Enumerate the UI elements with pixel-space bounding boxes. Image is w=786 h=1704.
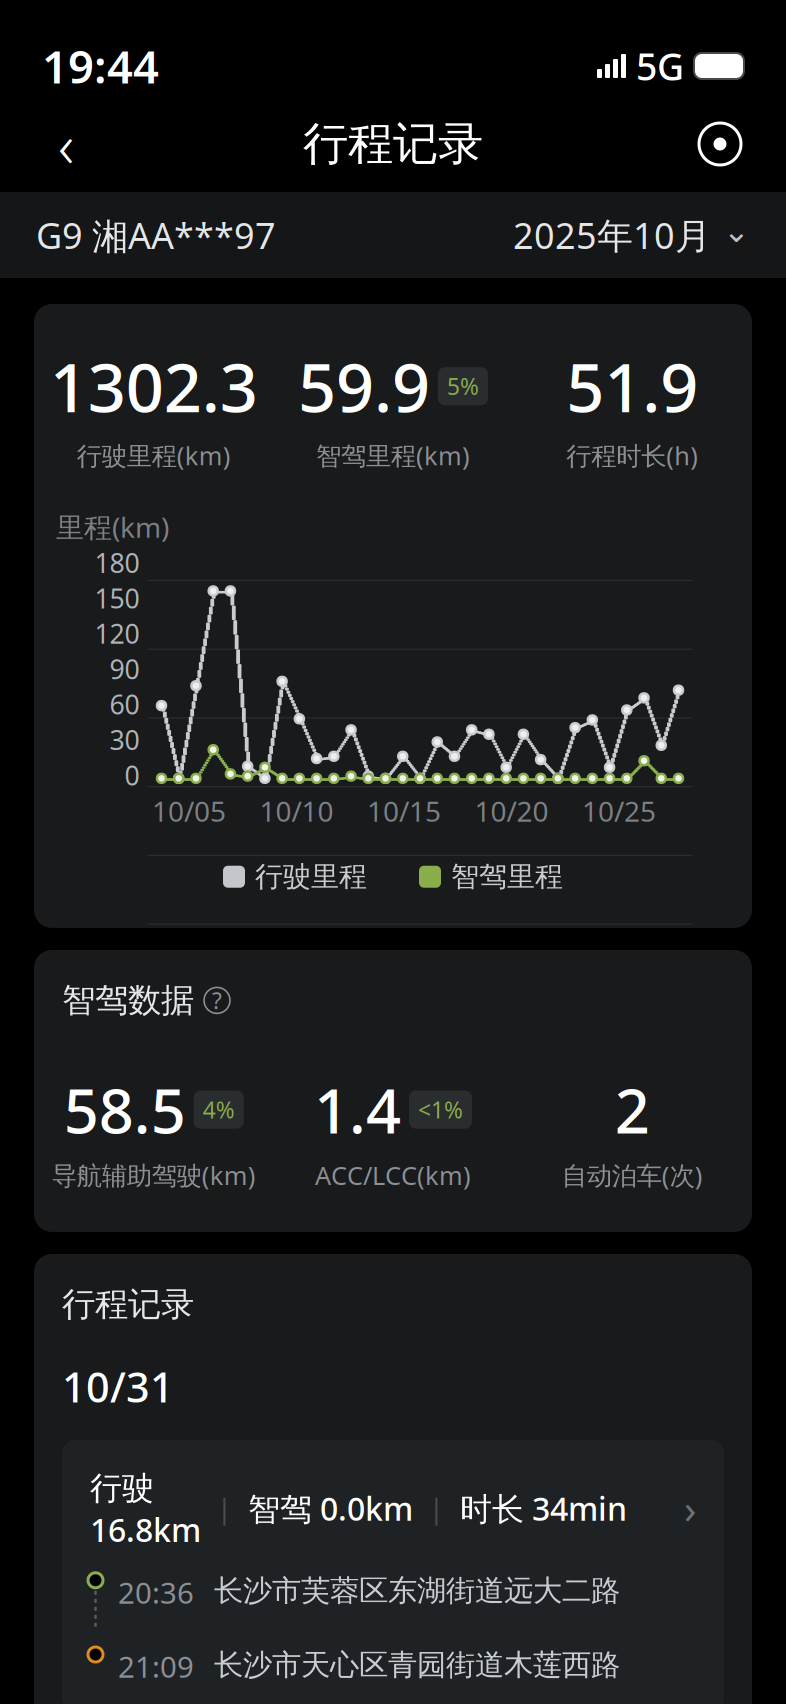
staticText: 10/25 (582, 792, 656, 830)
staticText: 5G (636, 41, 684, 91)
staticText: 10/15 (367, 792, 441, 830)
staticText: 58.5 (64, 1069, 186, 1150)
staticText: G9 湘AA***97 (36, 211, 276, 259)
staticText: 10/05 (152, 792, 226, 830)
staticText: 150 (94, 580, 139, 616)
staticText: 2 (615, 1069, 650, 1150)
staticText: 4% (203, 1094, 235, 1125)
staticText: 20:36 (118, 1573, 194, 1612)
staticText: 59.9 (298, 342, 430, 430)
staticText: › (684, 1482, 696, 1535)
staticText: ? (212, 985, 222, 1015)
staticText: 30 (109, 722, 139, 757)
staticText: 10/31 (62, 1359, 174, 1414)
staticText: 智驾 0.0km (248, 1487, 413, 1529)
staticText: 10/10 (259, 792, 333, 830)
staticText: 10/20 (474, 792, 548, 830)
staticText: 行程时长(h) (566, 438, 698, 472)
staticText: 1302.3 (50, 342, 258, 430)
button[interactable]: 行驶 16.8km (62, 1440, 724, 1704)
staticText: 里程(km) (56, 508, 169, 545)
staticText: 90 (109, 651, 139, 686)
staticText: 长沙市天心区青园街道木莲西路 (214, 1647, 620, 1683)
staticText: <1% (418, 1094, 463, 1125)
staticText: 5% (447, 371, 479, 401)
staticText: 120 (94, 616, 139, 651)
staticText: 行程记录 (303, 116, 483, 172)
staticText: | (217, 1491, 232, 1526)
staticText: 0 (124, 757, 139, 793)
staticText: ACC/LCC(km) (315, 1158, 471, 1192)
staticText: 导航辅助驾驶(km) (52, 1158, 256, 1192)
button[interactable]: 返回 (36, 114, 96, 174)
button[interactable]: 说明 (204, 987, 230, 1013)
staticText: 自动泊车(次) (562, 1158, 703, 1192)
staticText: 19:44 (42, 36, 159, 96)
staticText: 1.4 (314, 1069, 401, 1150)
staticText: ‹ (58, 103, 74, 185)
staticText: 长沙市芙蓉区东湖街道远大二路 (214, 1573, 620, 1609)
staticText: 60 (109, 687, 139, 722)
staticText: 智驾里程 (451, 859, 563, 894)
staticText: 行驶里程 (255, 859, 367, 894)
staticText: 智驾里程(km) (316, 438, 470, 472)
staticText: 智驾数据 (62, 980, 194, 1021)
staticText: ⌄ (723, 213, 750, 249)
staticText: 21:09 (118, 1647, 194, 1686)
staticText: 时长 34min (460, 1487, 627, 1529)
staticText: 行驶里程(km) (77, 438, 231, 472)
button[interactable]: 2025年10月 (513, 211, 750, 259)
staticText: 2025年10月 (513, 211, 711, 259)
staticText: | (429, 1491, 444, 1526)
staticText: 行程记录 (62, 1284, 194, 1325)
staticText: 51.9 (566, 342, 698, 430)
button[interactable]: 设置 (690, 114, 750, 174)
staticText: 行驶 16.8km (90, 1466, 201, 1551)
staticText: 180 (94, 545, 139, 580)
